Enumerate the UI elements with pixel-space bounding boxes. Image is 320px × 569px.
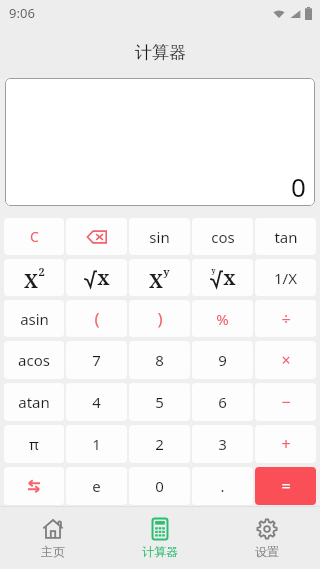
staticText: 1/X [274, 268, 297, 288]
button[interactable]: cos [192, 218, 253, 255]
staticText: C [30, 227, 39, 246]
staticText: atan [18, 392, 50, 412]
button[interactable]: 3 [192, 425, 253, 463]
staticText: 1 [92, 434, 101, 454]
staticText: × [281, 349, 291, 371]
button[interactable]: 0 [129, 467, 190, 505]
staticText: X [149, 268, 163, 294]
staticText: 5 [155, 392, 164, 412]
staticText: + [281, 433, 291, 455]
staticText: ( [94, 307, 100, 330]
staticText: 计算器 [142, 544, 178, 559]
button[interactable]: − [255, 383, 316, 421]
button[interactable]: 6 [192, 383, 253, 421]
button[interactable]: 9 [192, 341, 253, 379]
button[interactable]: x [66, 259, 127, 296]
button[interactable]: e [66, 467, 127, 505]
staticText: tan [274, 227, 298, 247]
staticText: 2 [38, 264, 45, 279]
button[interactable]: 8 [129, 341, 190, 379]
staticText: X [24, 268, 38, 294]
button[interactable]: acos [4, 341, 64, 379]
staticText: ÷ [281, 308, 291, 330]
staticText: y [211, 266, 216, 276]
staticText: asin [20, 309, 49, 329]
staticText: 计算器 [135, 42, 186, 63]
button[interactable]: X [4, 259, 64, 296]
staticText: 2 [155, 434, 164, 454]
button[interactable]: ÷ [255, 300, 316, 337]
staticText: 主页 [41, 544, 65, 559]
button[interactable]: π [4, 425, 64, 463]
staticText: ) [157, 307, 163, 330]
staticText: 设置 [255, 544, 279, 559]
button[interactable]: tan [255, 218, 316, 255]
staticText: 7 [92, 350, 101, 370]
button[interactable]: atan [4, 383, 64, 421]
staticText: 8 [155, 350, 164, 370]
staticText: 4 [92, 392, 101, 412]
button[interactable]: 2 [129, 425, 190, 463]
button[interactable]: × [255, 341, 316, 379]
button[interactable]: X [129, 259, 190, 296]
button[interactable]: 1 [66, 425, 127, 463]
staticText: − [281, 391, 291, 413]
staticText: 3 [218, 434, 227, 454]
staticText: x [223, 265, 236, 291]
button[interactable]: ) [129, 300, 190, 337]
staticText: e [92, 476, 101, 496]
button[interactable]: 主页 [0, 507, 106, 569]
button[interactable]: y [192, 259, 253, 296]
staticText: 0 [155, 476, 164, 496]
staticText: sin [149, 227, 170, 247]
button[interactable]: 5 [129, 383, 190, 421]
button[interactable]: Backspace [66, 218, 127, 255]
button[interactable]: + [255, 425, 316, 463]
button[interactable]: 1/X [255, 259, 316, 296]
button[interactable]: 设置 [213, 507, 320, 569]
staticText: = [281, 475, 291, 497]
button[interactable]: = [255, 467, 316, 505]
button[interactable]: asin [4, 300, 64, 337]
button[interactable]: C [4, 218, 64, 255]
staticText: . [220, 476, 225, 496]
staticText: cos [211, 227, 235, 247]
staticText: 0 [291, 169, 306, 204]
button[interactable]: 4 [66, 383, 127, 421]
staticText: x [97, 265, 110, 291]
button[interactable]: Swap [4, 467, 64, 505]
button[interactable]: % [192, 300, 253, 337]
button[interactable]: sin [129, 218, 190, 255]
staticText: y [163, 264, 170, 279]
button[interactable]: 7 [66, 341, 127, 379]
staticText: π [29, 434, 39, 454]
button[interactable]: . [192, 467, 253, 505]
button[interactable]: ( [66, 300, 127, 337]
staticText: acos [18, 350, 50, 370]
button[interactable]: 计算器 [106, 507, 213, 569]
staticText: 6 [218, 392, 227, 412]
staticText: % [216, 309, 229, 329]
staticText: 9 [218, 350, 227, 370]
staticText: 9:06 [9, 4, 35, 22]
